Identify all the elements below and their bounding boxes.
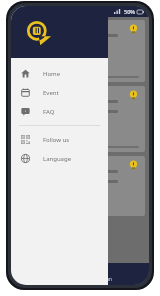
staticText: Follow us — [43, 136, 70, 144]
staticText: Language — [43, 155, 72, 163]
staticText: 50% — [124, 8, 135, 15]
button[interactable]: Home — [11, 64, 108, 83]
button[interactable]: Follow us — [11, 130, 108, 149]
button[interactable]: FAQ — [11, 102, 108, 121]
staticText: Event — [43, 89, 59, 97]
staticText: Home — [43, 70, 61, 78]
staticText: 7:08 — [16, 8, 27, 15]
staticText: FAQ — [43, 108, 55, 116]
button[interactable] — [13, 20, 145, 82]
button[interactable] — [13, 86, 145, 152]
button[interactable] — [13, 156, 145, 216]
button[interactable]: Language — [11, 149, 108, 168]
button[interactable]: My Plan — [69, 263, 138, 285]
staticText: My Plan — [95, 276, 112, 282]
button[interactable]: Event — [11, 83, 108, 102]
